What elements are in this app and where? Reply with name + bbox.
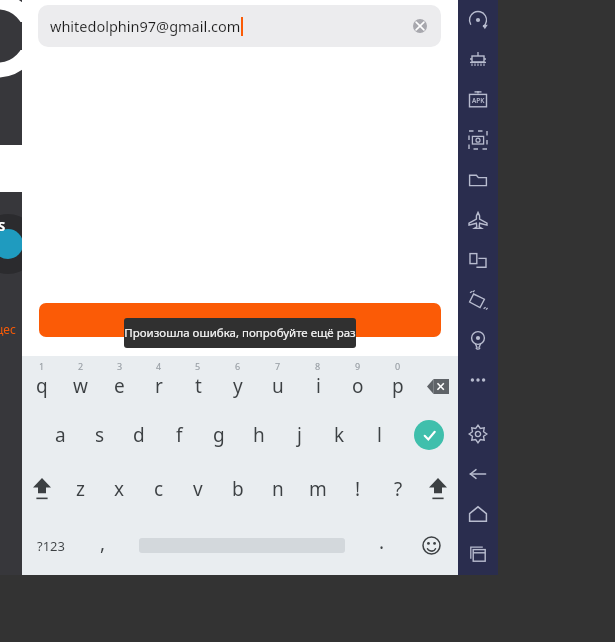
staticText: цес bbox=[0, 321, 16, 337]
staticText: 8 bbox=[315, 360, 321, 372]
button[interactable]: Shift bbox=[418, 462, 458, 516]
staticText: t bbox=[195, 373, 202, 399]
staticText: 1 bbox=[39, 360, 45, 372]
button[interactable]: Space bbox=[125, 516, 359, 575]
button[interactable]: 7 bbox=[258, 356, 298, 408]
staticText: a bbox=[55, 422, 66, 448]
staticText: ? bbox=[394, 476, 403, 502]
staticText: 6 bbox=[235, 360, 241, 372]
button[interactable]: 4 bbox=[139, 356, 178, 408]
button[interactable]: Folder bbox=[458, 160, 498, 200]
button[interactable]: whitedolphin97@gmail.com bbox=[38, 5, 441, 47]
button[interactable]: Shift bbox=[22, 462, 61, 516]
button[interactable]: , bbox=[80, 516, 125, 575]
staticText: 7 bbox=[275, 360, 281, 372]
staticText: q bbox=[36, 373, 48, 399]
button[interactable]: 8 bbox=[298, 356, 338, 408]
staticText: m bbox=[309, 476, 327, 502]
button[interactable]: z bbox=[61, 462, 100, 516]
button[interactable]: a bbox=[41, 408, 80, 462]
button[interactable]: Resize bbox=[458, 40, 498, 80]
staticText: k bbox=[334, 422, 345, 448]
button[interactable]: 3 bbox=[100, 356, 139, 408]
staticText: b bbox=[232, 476, 244, 502]
staticText: . bbox=[379, 529, 385, 555]
staticText: 3 bbox=[117, 360, 123, 372]
staticText: 0 bbox=[395, 360, 401, 372]
button[interactable]: Backspace bbox=[418, 356, 458, 408]
staticText: c bbox=[154, 476, 164, 502]
staticText: u bbox=[272, 373, 284, 399]
staticText: i bbox=[316, 373, 321, 399]
button[interactable]: c bbox=[139, 462, 178, 516]
staticText: 5 bbox=[195, 360, 201, 372]
button[interactable]: Clear text bbox=[407, 13, 433, 39]
button[interactable]: k bbox=[319, 408, 359, 462]
button[interactable]: 0 bbox=[378, 356, 418, 408]
staticText: ! bbox=[355, 476, 361, 502]
button[interactable]: Recents bbox=[458, 534, 498, 574]
staticText: z bbox=[76, 476, 85, 502]
staticText: p bbox=[392, 373, 404, 399]
staticText: d bbox=[133, 422, 145, 448]
staticText: APK bbox=[472, 96, 485, 105]
button[interactable]: s bbox=[80, 408, 119, 462]
staticText: f bbox=[176, 422, 183, 448]
button[interactable]: Location bbox=[458, 320, 498, 360]
button[interactable]: 6 bbox=[218, 356, 258, 408]
button[interactable]: Settings bbox=[458, 414, 498, 454]
button[interactable]: Screenshot bbox=[458, 120, 498, 160]
button[interactable]: Tilt bbox=[458, 280, 498, 320]
staticText: o bbox=[352, 373, 364, 399]
button[interactable]: 2 bbox=[61, 356, 100, 408]
staticText: n bbox=[272, 476, 284, 502]
button[interactable]: m bbox=[298, 462, 338, 516]
staticText: , bbox=[100, 530, 106, 556]
button[interactable]: . bbox=[359, 516, 404, 575]
button[interactable]: Fold bbox=[458, 240, 498, 280]
button[interactable]: x bbox=[100, 462, 139, 516]
button[interactable]: f bbox=[159, 408, 199, 462]
staticText: ?123 bbox=[37, 537, 65, 555]
button[interactable]: g bbox=[199, 408, 239, 462]
staticText: 9 bbox=[355, 360, 361, 372]
button[interactable]: Done bbox=[399, 408, 458, 462]
button[interactable]: 5 bbox=[178, 356, 218, 408]
staticText: Произошла ошибка, попробуйте ещё раз bbox=[124, 325, 356, 341]
button[interactable]: b bbox=[218, 462, 258, 516]
staticText: x bbox=[114, 476, 125, 502]
staticText: v bbox=[193, 476, 203, 502]
staticText: y bbox=[233, 373, 243, 399]
button[interactable]: Install APK bbox=[458, 80, 498, 120]
staticText: g bbox=[213, 422, 225, 448]
staticText: r bbox=[155, 373, 163, 399]
button[interactable]: ? bbox=[378, 462, 418, 516]
button[interactable]: j bbox=[279, 408, 319, 462]
button[interactable]: l bbox=[359, 408, 399, 462]
button[interactable]: More bbox=[458, 360, 498, 400]
staticText: whitedolphin97@gmail.com bbox=[50, 16, 241, 36]
button[interactable]: 9 bbox=[338, 356, 378, 408]
staticText: S bbox=[0, 217, 6, 235]
staticText: w bbox=[73, 373, 88, 399]
button[interactable]: ?123 bbox=[22, 516, 80, 575]
staticText: 2 bbox=[78, 360, 84, 372]
button[interactable]: Airplane mode bbox=[458, 200, 498, 240]
button[interactable]: ! bbox=[338, 462, 378, 516]
button[interactable]: n bbox=[258, 462, 298, 516]
button[interactable]: Emoji bbox=[404, 516, 458, 575]
button[interactable]: Rotate bbox=[458, 0, 498, 40]
button[interactable]: Continue bbox=[39, 303, 441, 337]
staticText: l bbox=[377, 422, 382, 448]
staticText: h bbox=[253, 422, 265, 448]
staticText: 4 bbox=[156, 360, 162, 372]
staticText: s bbox=[95, 422, 105, 448]
button[interactable]: h bbox=[239, 408, 279, 462]
button[interactable]: 1 bbox=[22, 356, 61, 408]
button[interactable]: Home bbox=[458, 494, 498, 534]
button[interactable]: Back bbox=[458, 454, 498, 494]
staticText: j bbox=[297, 422, 302, 448]
button[interactable]: v bbox=[178, 462, 218, 516]
button[interactable]: d bbox=[119, 408, 159, 462]
staticText: e bbox=[114, 373, 125, 399]
